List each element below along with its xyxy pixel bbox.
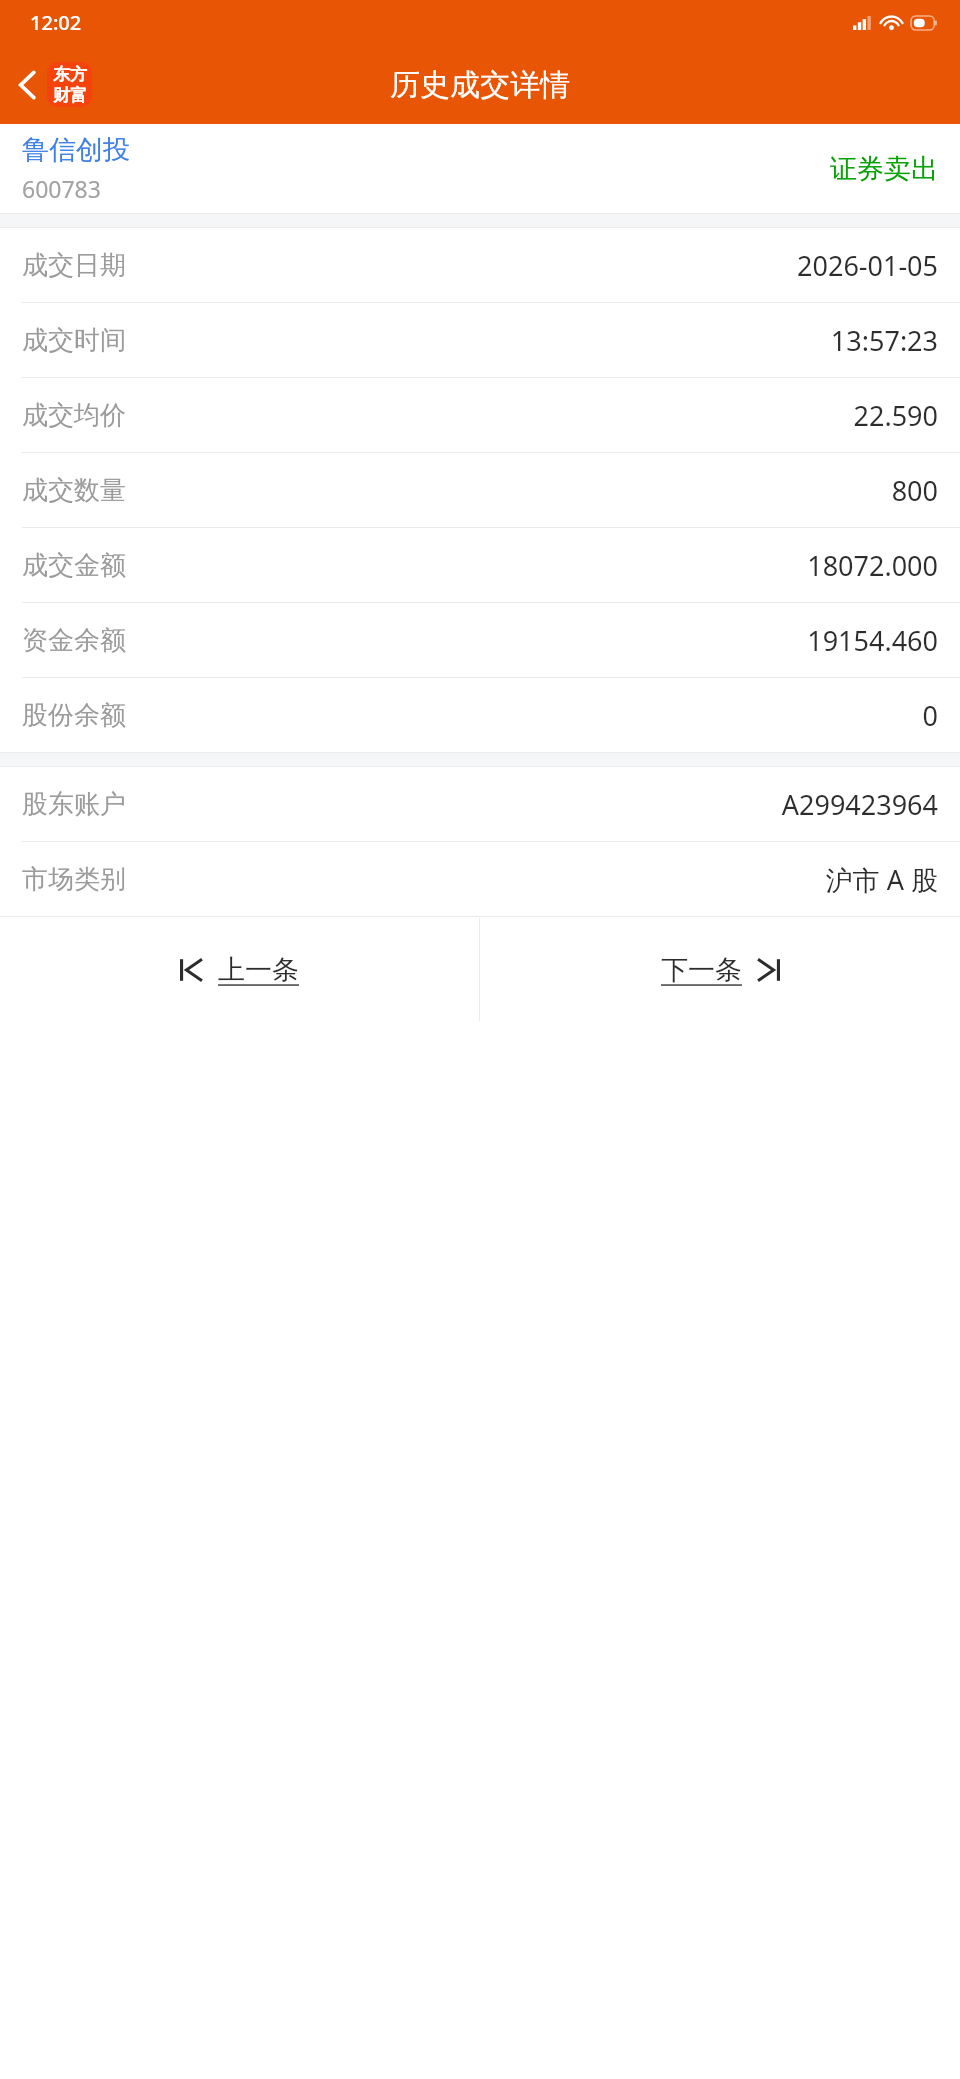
- button[interactable]: 成交均价: [0, 378, 960, 452]
- staticText: 资金余额: [22, 624, 807, 657]
- staticText: 22.590: [853, 397, 938, 434]
- button[interactable]: 成交日期: [0, 228, 960, 302]
- staticText: 沪市 A 股: [825, 861, 938, 898]
- button[interactable]: 返回: [8, 54, 102, 115]
- staticText: 成交金额: [22, 549, 807, 582]
- staticText: 600783: [22, 173, 101, 204]
- other: 上一条: [180, 955, 202, 985]
- staticText: 18072.000: [807, 547, 938, 584]
- button[interactable]: 上一条: [0, 917, 479, 1022]
- staticText: 成交均价: [22, 399, 853, 432]
- button[interactable]: 资金余额: [0, 603, 960, 677]
- button[interactable]: 成交金额: [0, 528, 960, 602]
- staticText: 12:02: [30, 9, 82, 36]
- staticText: A299423964: [781, 786, 938, 823]
- other: 下一条: [758, 955, 780, 985]
- staticText: 成交时间: [22, 324, 830, 357]
- staticText: 成交日期: [22, 249, 797, 282]
- staticText: 股东账户: [22, 788, 781, 821]
- staticText: 0: [922, 697, 938, 734]
- button[interactable]: 下一条: [480, 917, 960, 1022]
- button[interactable]: 成交时间: [0, 303, 960, 377]
- staticText: 证券卖出: [830, 152, 938, 186]
- staticText: 历史成交详情: [390, 66, 570, 104]
- button[interactable]: 市场类别: [0, 842, 960, 916]
- staticText: 东方: [53, 64, 87, 85]
- staticText: 财富: [53, 85, 87, 106]
- button[interactable]: 股份余额: [0, 678, 960, 752]
- staticText: 19154.460: [807, 622, 938, 659]
- staticText: 2026-01-05: [797, 247, 938, 284]
- staticText: 股份余额: [22, 699, 922, 732]
- staticText: 13:57:23: [830, 322, 938, 359]
- staticText: 成交数量: [22, 474, 891, 507]
- button[interactable]: 成交数量: [0, 453, 960, 527]
- button[interactable]: 股东账户: [0, 767, 960, 841]
- staticText: 鲁信创投: [22, 133, 130, 167]
- staticText: 上一条: [218, 953, 299, 987]
- staticText: 800: [891, 472, 938, 509]
- staticText: 市场类别: [22, 863, 825, 896]
- staticText: 下一条: [661, 953, 742, 987]
